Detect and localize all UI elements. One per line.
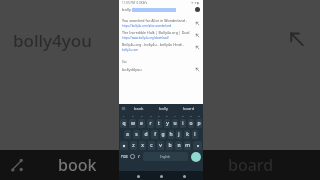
staticText: k xyxy=(186,131,189,138)
button[interactable]: Insert suggestion xyxy=(195,67,200,72)
staticText: r xyxy=(149,120,152,127)
staticText: board xyxy=(228,154,274,176)
button[interactable]: Insert suggestion xyxy=(195,45,200,50)
button[interactable]: 8 xyxy=(179,112,187,118)
button[interactable]: Share xyxy=(10,158,24,172)
staticText: board xyxy=(183,106,195,111)
staticText: i xyxy=(182,120,184,127)
staticText: q xyxy=(122,120,126,127)
button[interactable]: Back arrow xyxy=(288,30,306,48)
staticText: You searched for Alice in Wonderland - B… xyxy=(122,18,195,23)
staticText: The Incredible Hulk | Bolly4u.org | Dual… xyxy=(122,30,195,35)
staticText: e xyxy=(140,120,143,127)
button[interactable]: d xyxy=(142,130,149,139)
button[interactable]: q xyxy=(120,119,127,128)
button[interactable]: bolly xyxy=(122,5,200,14)
button[interactable]: r xyxy=(147,119,154,128)
button[interactable]: 6 xyxy=(163,112,171,118)
button[interactable]: a xyxy=(124,130,131,139)
button[interactable]: x xyxy=(139,141,146,150)
staticText: bolly4you xyxy=(13,29,92,52)
button[interactable]: 4 xyxy=(146,112,155,118)
button[interactable]: Insert suggestion xyxy=(195,21,200,26)
staticText: ⏷ ⏷ ▮ xyxy=(191,1,200,5)
button[interactable]: 3 xyxy=(137,112,146,118)
button[interactable]: Bolly4u.org - bolly4u - bolly4u Hindi - … xyxy=(122,41,200,53)
button[interactable]: Insert suggestion xyxy=(195,33,200,38)
button[interactable]: c xyxy=(148,141,155,150)
staticText: bolly4u.com xyxy=(122,48,139,52)
button[interactable]: h xyxy=(168,130,174,139)
button[interactable]: bollyd4you xyxy=(122,65,200,74)
button[interactable]: m xyxy=(184,141,191,150)
button[interactable]: y xyxy=(164,119,170,128)
staticText: l xyxy=(194,131,196,138)
staticText: o xyxy=(189,120,193,127)
button[interactable]: Back xyxy=(134,172,142,180)
staticText: https://bolly4u.com/alice-wonderland xyxy=(122,24,172,28)
button[interactable]: / xyxy=(136,151,142,162)
staticText: w xyxy=(131,120,135,127)
button[interactable]: u xyxy=(172,119,178,128)
staticText: https://www.bolly4u.org/download/The_Inc… xyxy=(122,36,195,40)
button[interactable]: j xyxy=(176,130,182,139)
button[interactable]: 7 xyxy=(171,112,179,118)
staticText: bolly xyxy=(159,106,168,111)
button[interactable]: b xyxy=(166,141,173,150)
button[interactable]: n xyxy=(175,141,182,150)
button[interactable]: English xyxy=(143,152,188,161)
button[interactable]: bolly xyxy=(151,104,176,112)
button[interactable]: 5 xyxy=(155,112,163,118)
button[interactable]: Clear xyxy=(195,7,200,12)
button[interactable]: ?123 xyxy=(121,152,128,161)
button[interactable]: 2 xyxy=(128,112,137,118)
staticText: book xyxy=(58,154,97,176)
button[interactable]: z xyxy=(130,141,137,150)
button[interactable]: f xyxy=(151,130,158,139)
staticText: n xyxy=(177,142,181,149)
button[interactable]: Recents xyxy=(180,172,188,180)
staticText: a xyxy=(126,131,129,138)
staticText: v xyxy=(159,142,162,149)
button[interactable]: p xyxy=(196,119,202,128)
staticText: Bolly4u.org - bolly4u - bolly4u Hindi - … xyxy=(122,42,195,47)
staticText: h xyxy=(169,131,173,138)
staticText: 3 xyxy=(141,114,143,117)
staticText: 9 xyxy=(190,114,192,117)
staticText: ?123 xyxy=(121,155,128,159)
button[interactable]: 1 xyxy=(119,112,128,118)
staticText: 5 xyxy=(158,114,160,117)
button[interactable]: Delete xyxy=(193,141,202,150)
button[interactable]: t xyxy=(156,119,162,128)
button[interactable]: g xyxy=(160,130,166,139)
button[interactable]: k xyxy=(184,130,190,139)
button[interactable]: v xyxy=(157,141,164,150)
button[interactable]: w xyxy=(129,119,136,128)
staticText: 6 xyxy=(166,114,168,117)
staticText: x xyxy=(141,142,144,149)
button[interactable]: i xyxy=(180,119,186,128)
button[interactable]: o xyxy=(188,119,194,128)
button[interactable]: book xyxy=(126,104,151,112)
staticText: 11:05 PM 0.0KB/s xyxy=(122,1,148,5)
button[interactable]: You searched for Alice in Wonderland - B… xyxy=(122,17,200,29)
staticText: book xyxy=(134,106,144,111)
button[interactable]: Home xyxy=(157,172,165,180)
staticText: s xyxy=(135,131,138,138)
button[interactable]: The Incredible Hulk | Bolly4u.org | Dual… xyxy=(122,29,200,41)
staticText: 8 xyxy=(182,114,184,117)
staticText: b xyxy=(168,142,172,149)
staticText: p xyxy=(197,120,201,127)
button[interactable]: e xyxy=(138,119,145,128)
staticText: f xyxy=(154,131,156,138)
button[interactable]: Emoji xyxy=(129,153,136,160)
staticText: 1 xyxy=(123,114,125,117)
button[interactable]: board xyxy=(176,104,201,112)
button[interactable]: l xyxy=(192,130,198,139)
button[interactable]: Keyboard menu xyxy=(121,106,126,111)
button[interactable]: Shift xyxy=(120,141,128,150)
button[interactable]: 9 xyxy=(187,112,195,118)
button[interactable]: 0 xyxy=(195,112,203,118)
button[interactable]: s xyxy=(133,130,140,139)
button[interactable]: Search xyxy=(191,152,201,162)
